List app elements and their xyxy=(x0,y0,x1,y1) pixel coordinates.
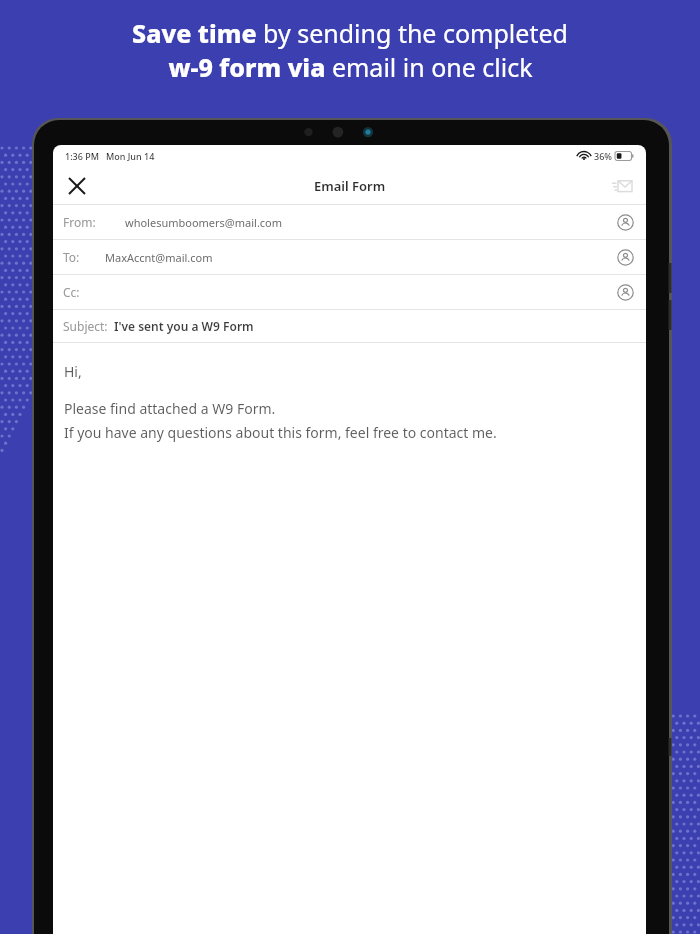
button[interactable]: Choose contact xyxy=(614,246,636,268)
staticText: From: xyxy=(63,214,111,230)
button[interactable]: Subject: xyxy=(53,310,646,343)
staticText: Email Form xyxy=(314,177,386,195)
button[interactable]: Send xyxy=(605,169,639,203)
button[interactable]: To: xyxy=(53,240,646,275)
button[interactable]: Cc: xyxy=(53,275,646,310)
button[interactable]: Hi, xyxy=(64,362,634,442)
button[interactable]: Close xyxy=(60,169,94,203)
staticText: w-9 form via email in one click xyxy=(168,50,533,84)
staticText: I've sent you a W9 Form xyxy=(114,318,254,334)
staticText: MaxAccnt@mail.com xyxy=(105,250,213,265)
staticText: Save time by sending the completed xyxy=(132,16,568,50)
staticText: 1:36 PM xyxy=(65,150,99,162)
button[interactable]: From: xyxy=(53,205,646,240)
staticText: Cc: xyxy=(63,284,93,300)
staticText: If you have any questions about this for… xyxy=(64,423,497,442)
button[interactable]: Choose contact xyxy=(614,281,636,303)
staticText: Subject: xyxy=(63,318,108,334)
staticText: Hi, xyxy=(64,362,82,381)
staticText: 36% xyxy=(594,150,612,162)
staticText: Please find attached a W9 Form. xyxy=(64,399,276,418)
staticText: Mon Jun 14 xyxy=(106,150,155,162)
button[interactable]: Choose contact xyxy=(614,211,636,233)
staticText: wholesumboomers@mail.com xyxy=(125,215,283,230)
staticText: To: xyxy=(63,249,93,265)
